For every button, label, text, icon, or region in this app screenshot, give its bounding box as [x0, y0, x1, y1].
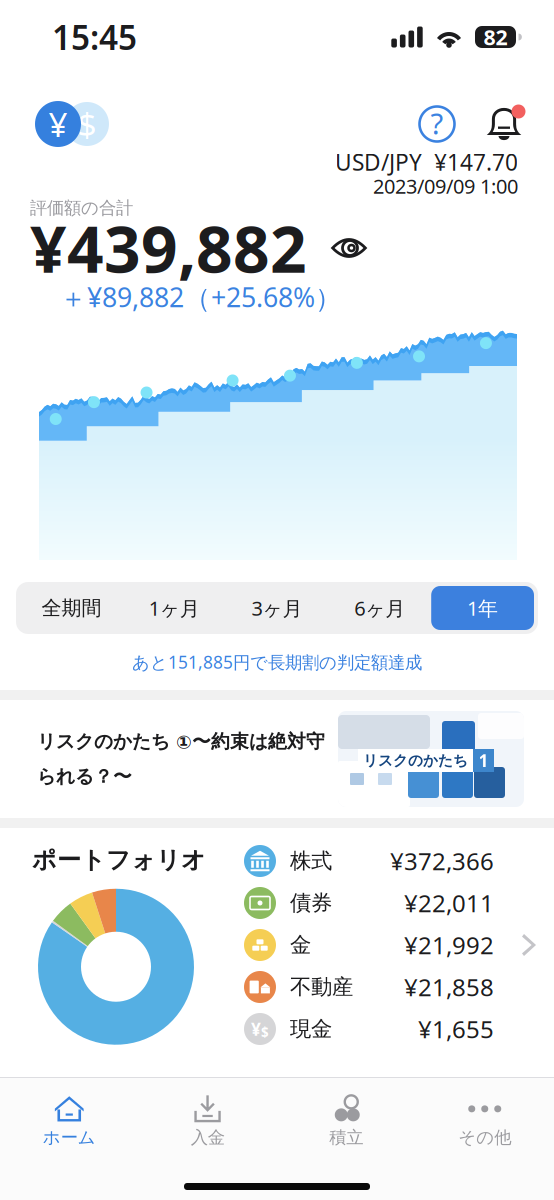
- staticText: 15:45: [52, 15, 137, 59]
- button[interactable]: ホーム: [0, 1092, 138, 1150]
- staticText: 6ヶ月: [354, 595, 405, 621]
- staticText: ¥1,655: [418, 1013, 494, 1045]
- button[interactable]: ポートフォリオ: [0, 828, 554, 1058]
- button[interactable]: 1年: [431, 586, 534, 630]
- staticText: ポートフォリオ: [32, 845, 206, 875]
- staticText: 金: [290, 932, 311, 958]
- staticText: リスクのかたち: [363, 751, 468, 769]
- staticText: ¥372,366: [390, 845, 494, 877]
- staticText: ¥21,992: [404, 929, 494, 961]
- staticText: 不動産: [290, 974, 353, 1000]
- button[interactable]: ヘルプ: [414, 101, 460, 147]
- button[interactable]: 金額を隠す: [329, 233, 369, 263]
- staticText: リスクのかたち ①〜約束は絶対守られる？〜: [37, 730, 325, 788]
- staticText: ¥22,011: [404, 887, 494, 919]
- staticText: 株式: [290, 848, 332, 874]
- staticText: 1ヶ月: [149, 595, 200, 621]
- button[interactable]: あと151,885円で長期割の判定額達成: [0, 634, 554, 690]
- button[interactable]: 6ヶ月: [328, 586, 431, 630]
- staticText: $: [261, 1023, 269, 1041]
- staticText: その他: [458, 1127, 511, 1148]
- button[interactable]: その他: [415, 1092, 554, 1150]
- staticText: ¥439,882: [30, 205, 307, 290]
- staticText: 1年: [467, 595, 498, 621]
- button[interactable]: 入金: [138, 1092, 277, 1150]
- staticText: ?: [430, 103, 443, 142]
- staticText: $: [77, 102, 96, 146]
- button[interactable]: 3ヶ月: [226, 586, 328, 630]
- button[interactable]: 全期間: [20, 586, 123, 630]
- staticText: あと151,885円で長期割の判定額達成: [132, 650, 422, 673]
- button[interactable]: 通貨切替: [35, 101, 111, 147]
- staticText: ホーム: [43, 1127, 96, 1148]
- staticText: 現金: [290, 1016, 332, 1042]
- staticText: ¥: [251, 1017, 261, 1040]
- button[interactable]: 積立: [277, 1092, 415, 1150]
- staticText: 2023/09/09 1:00: [373, 173, 518, 199]
- staticText: ¥21,858: [404, 971, 494, 1003]
- staticText: USD/JPY ¥147.70: [335, 147, 518, 177]
- staticText: ¥: [48, 102, 67, 146]
- button[interactable]: お知らせ: [482, 102, 526, 146]
- staticText: 全期間: [41, 596, 101, 620]
- staticText: ＋¥89,882（+25.68%）: [60, 279, 342, 315]
- staticText: 債券: [290, 890, 332, 916]
- staticText: 3ヶ月: [251, 595, 302, 621]
- staticText: 積立: [329, 1127, 363, 1148]
- staticText: 評価額の合計: [30, 197, 133, 219]
- button[interactable]: 1ヶ月: [123, 586, 226, 630]
- staticText: 1: [478, 749, 488, 772]
- staticText: 82: [483, 23, 507, 51]
- button[interactable]: リスクのかたち ①〜約束は絶対守られる？〜: [0, 700, 554, 818]
- staticText: 入金: [191, 1127, 225, 1148]
